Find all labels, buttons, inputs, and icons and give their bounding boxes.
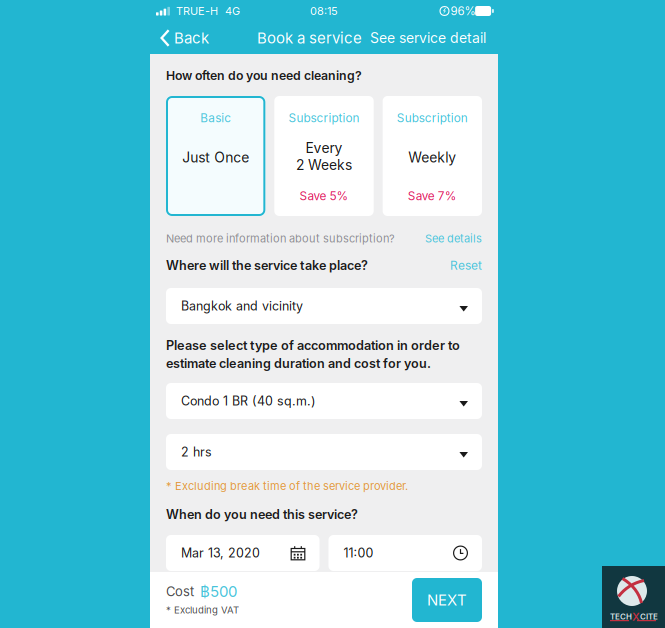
staticText: Just Once [182,149,249,166]
button[interactable]: Bangkok and vicinity [166,288,482,324]
staticText: * Excluding break time of the service pr… [166,479,408,493]
button[interactable]: Subscription [274,96,374,216]
staticText: * Excluding VAT [166,604,239,616]
staticText: Mar 13, 2020 [181,545,260,561]
staticText: 2 hrs [181,444,212,460]
staticText: TECH [610,612,632,621]
staticText: Need more information about subscription… [166,232,395,245]
button[interactable]: Back [155,22,214,54]
staticText: 4G [225,4,240,18]
staticText: Subscription [397,111,468,125]
staticText: Cost [166,584,194,599]
staticText: Weekly [408,149,456,166]
staticText: Condo 1 BR (40 sq.m.) [181,393,316,409]
staticText: Book a service [257,29,362,47]
staticText: Where will the service take place? [166,258,368,273]
staticText: NEXT [427,591,467,609]
button[interactable]: Condo 1 BR (40 sq.m.) [166,383,482,419]
button[interactable]: Mar 13, 2020 [166,535,319,571]
button[interactable]: Subscription [383,96,482,216]
staticText: TRUE-H [176,4,218,18]
staticText: 96% [450,4,475,18]
staticText: X [632,610,640,623]
button[interactable]: NEXT [412,578,482,622]
staticText: 08:15 [310,4,338,18]
staticText: How often do you need cleaning? [166,68,362,83]
button[interactable]: Reset [450,258,482,273]
staticText: See service detail [370,29,486,46]
staticText: Every [305,140,342,156]
button[interactable]: 11:00 [328,535,482,571]
staticText: Back [174,29,209,47]
button[interactable]: 2 hrs [166,434,482,470]
button[interactable]: Basic [166,96,265,216]
staticText: See details [425,232,482,245]
staticText: Subscription [288,111,359,125]
staticText: Save 7% [408,189,457,203]
staticText: 2 Weeks [296,157,352,173]
staticText: CITE [640,612,658,621]
staticText: 11:00 [343,545,373,561]
staticText: ฿500 [200,582,237,600]
staticText: Save 5% [299,189,348,203]
button[interactable]: See details [425,232,482,245]
staticText: Please select type of accommodation in o… [166,338,460,353]
staticText: estimate cleaning duration and cost for … [166,356,431,371]
staticText: When do you need this service? [166,507,358,522]
button[interactable]: See service detail [370,22,486,54]
staticText: Basic [200,111,231,125]
staticText: Bangkok and vicinity [181,298,303,314]
staticText: Reset [450,258,482,273]
